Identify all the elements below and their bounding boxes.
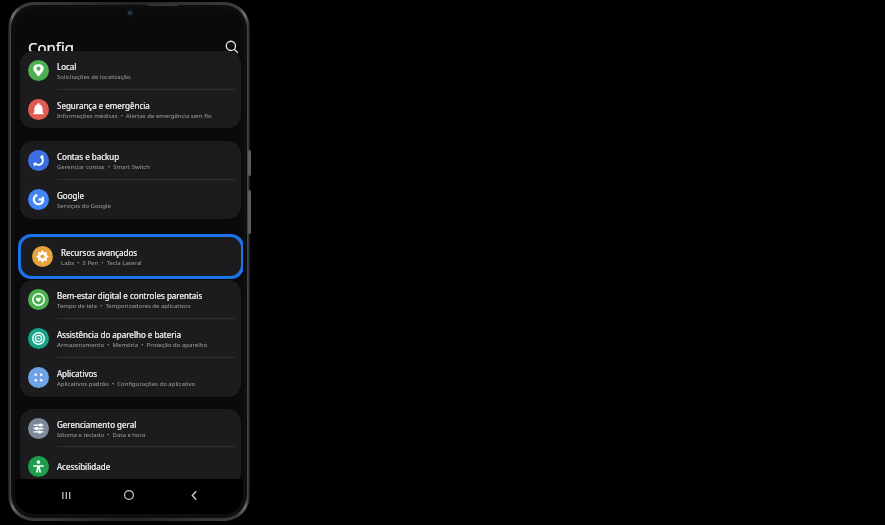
- button[interactable]: Acessibilidade: [20, 447, 241, 485]
- button[interactable]: Config.: [20, 33, 79, 61]
- button[interactable]: Pesquisar: [220, 35, 243, 59]
- staticText: Gerenciamento geral: [57, 419, 137, 430]
- staticText: Google: [57, 190, 84, 201]
- staticText: Solicitações de localização: [57, 73, 131, 81]
- staticText: Segurança e emergência: [57, 100, 150, 111]
- staticText: Acessibilidade: [57, 461, 111, 472]
- button[interactable]: Local: [20, 51, 241, 90]
- staticText: Aplicativos: [57, 368, 98, 379]
- staticText: Armazenamento • Memória • Proteção do ap…: [57, 341, 208, 349]
- staticText: Gerenciar contas • Smart Switch: [57, 163, 150, 171]
- staticText: Informações médicas • Alertas de emergên…: [57, 112, 212, 120]
- button[interactable]: Bem-estar digital e controles parentais: [20, 280, 241, 319]
- staticText: Aplicativos padrão • Configurações do ap…: [57, 380, 196, 388]
- button[interactable]: Gerenciamento geral: [20, 409, 241, 447]
- button[interactable]: Voltar: [183, 484, 205, 506]
- staticText: Local: [57, 61, 77, 72]
- button[interactable]: Google: [20, 180, 241, 219]
- staticText: Assistência do aparelho e bateria: [57, 329, 182, 340]
- staticText: Tempo de tela • Temporizadores de aplica…: [57, 302, 191, 310]
- button[interactable]: Contas e backup: [20, 141, 241, 180]
- staticText: Recursos avançados: [61, 247, 138, 258]
- button[interactable]: Recursos avançados: [21, 237, 241, 276]
- button[interactable]: Assistência do aparelho e bateria: [20, 319, 241, 358]
- button[interactable]: Segurança e emergência: [20, 90, 241, 128]
- staticText: Labs • S Pen • Tecla Lateral: [61, 259, 142, 267]
- button[interactable]: Recentes: [55, 484, 77, 506]
- staticText: Bem-estar digital e controles parentais: [57, 290, 203, 301]
- staticText: Serviços do Google: [57, 202, 111, 210]
- button[interactable]: Início: [118, 484, 140, 506]
- staticText: Config.: [28, 37, 79, 57]
- staticText: Idioma e teclado • Data e hora: [57, 431, 146, 439]
- staticText: Contas e backup: [57, 151, 120, 162]
- button[interactable]: Aplicativos: [20, 358, 241, 397]
